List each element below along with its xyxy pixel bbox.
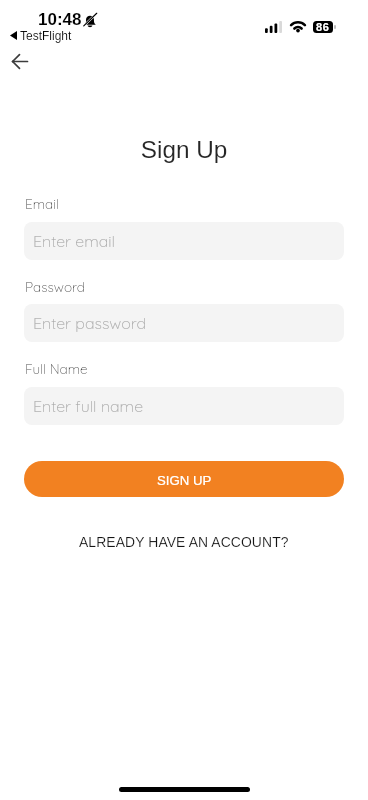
staticText: Full Name (25, 360, 88, 377)
staticText: Enter full name (33, 396, 144, 416)
button[interactable]: Enter email (24, 222, 344, 260)
staticText: Email (25, 195, 59, 212)
staticText: 86 (316, 21, 330, 33)
staticText: Password (25, 278, 85, 295)
staticText: SIGN UP (157, 473, 212, 488)
staticText: 10:48 (38, 10, 82, 29)
button[interactable]: Enter password (24, 304, 344, 342)
staticText: TestFlight (20, 29, 72, 42)
button[interactable]: Enter full name (24, 387, 344, 425)
button[interactable]: SIGN UP (24, 461, 344, 497)
staticText: Sign Up (0, 136, 368, 163)
button[interactable]: Back (4, 45, 36, 77)
staticText: Enter password (33, 313, 146, 333)
staticText: Enter email (33, 231, 116, 251)
staticText: ALREADY HAVE AN ACCOUNT? (79, 534, 289, 550)
button[interactable]: ALREADY HAVE AN ACCOUNT? (75, 532, 293, 552)
